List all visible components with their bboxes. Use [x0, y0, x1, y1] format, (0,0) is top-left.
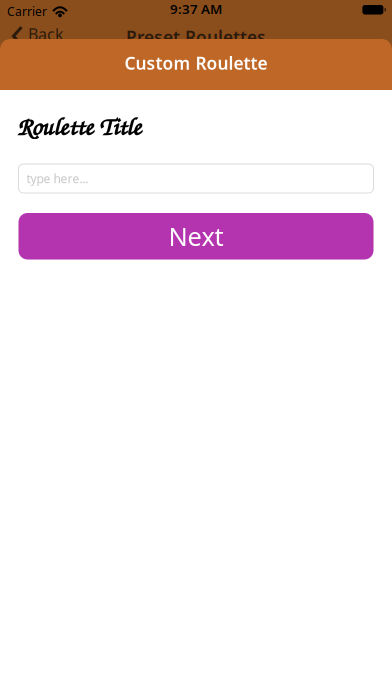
staticText: type here... — [26, 170, 88, 186]
staticText: Next — [168, 219, 223, 253]
button[interactable]: Next — [18, 213, 373, 259]
staticText: 9:37 AM — [170, 0, 222, 18]
button[interactable]: Back — [12, 25, 64, 47]
staticText: Carrier — [7, 3, 47, 19]
staticText: Custom Roulette — [124, 51, 267, 74]
staticText: Back — [28, 23, 64, 45]
staticText: Roulette Title — [17, 109, 141, 143]
button[interactable]: Roulette title text field — [18, 164, 373, 193]
staticText: Preset Roulettes — [126, 25, 266, 48]
